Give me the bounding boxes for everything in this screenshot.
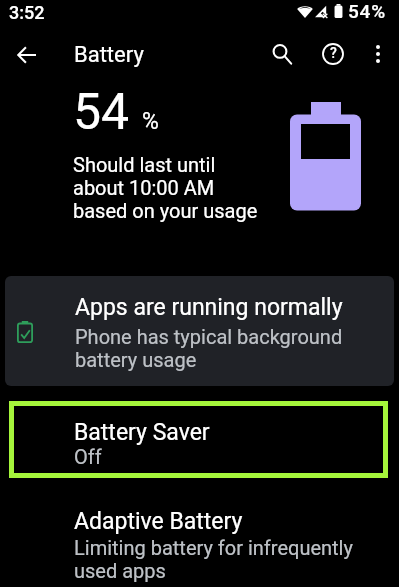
button[interactable]: Help: [311, 32, 355, 76]
staticText: Battery Saver: [74, 419, 210, 446]
button[interactable]: Apps are running normally: [5, 276, 394, 386]
button[interactable]: Battery Saver: [0, 395, 399, 485]
staticText: ?: [330, 45, 337, 61]
button[interactable]: Adaptive Battery: [0, 495, 399, 587]
staticText: Should last until about 10:00 AM based o…: [73, 154, 258, 223]
staticText: Off: [74, 445, 102, 468]
staticText: %: [142, 108, 159, 135]
staticText: 3:52: [9, 2, 45, 23]
staticText: Phone has typical background battery usa…: [75, 326, 343, 372]
staticText: Limiting battery for infrequently used a…: [74, 537, 353, 583]
staticText: Apps are running normally: [75, 294, 343, 321]
button[interactable]: Back: [2, 31, 50, 79]
staticText: 54%: [348, 0, 386, 22]
staticText: 54: [73, 83, 130, 142]
button[interactable]: Search: [260, 32, 304, 76]
button[interactable]: More options: [356, 32, 399, 76]
staticText: Adaptive Battery: [74, 508, 243, 535]
staticText: Battery: [74, 42, 144, 68]
